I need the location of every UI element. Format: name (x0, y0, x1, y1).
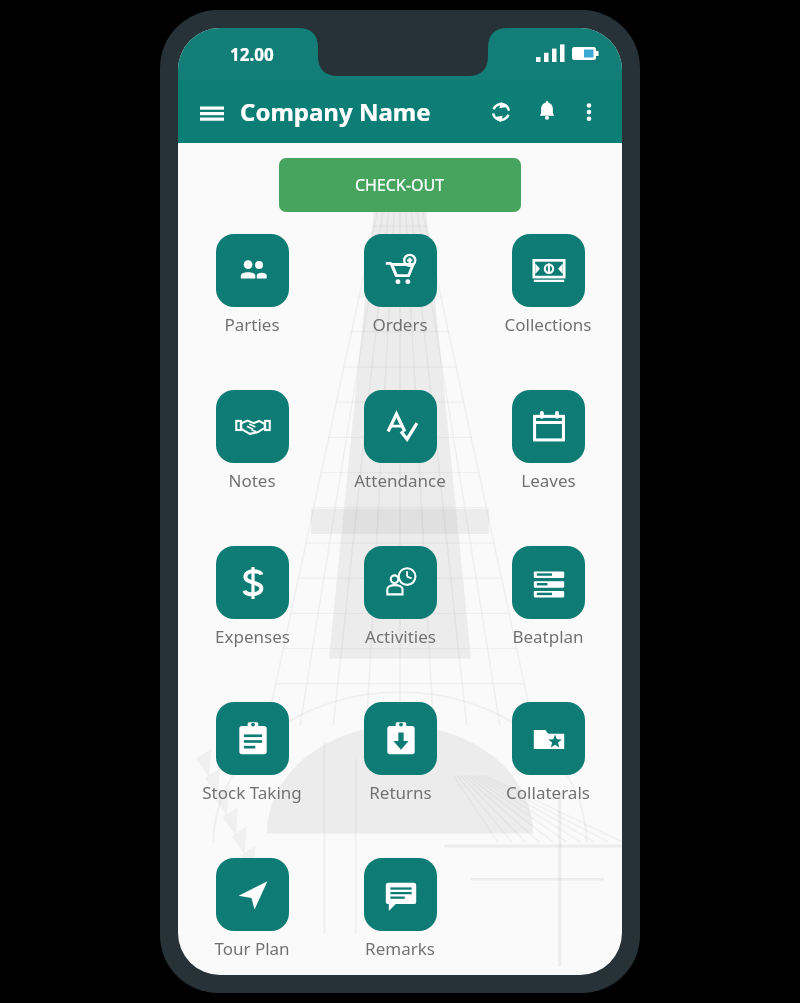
button[interactable]: Sync (482, 93, 520, 131)
staticText: Leaves (521, 469, 576, 492)
button[interactable]: Stock Taking (192, 702, 312, 804)
button[interactable]: Beatplan (488, 546, 608, 648)
staticText: CHECK-OUT (355, 174, 445, 196)
staticText: Stock Taking (202, 781, 302, 804)
staticText: Parties (224, 313, 280, 336)
button[interactable]: Orders (340, 234, 460, 336)
staticText: Beatplan (512, 625, 584, 648)
button[interactable]: Collections (488, 234, 608, 336)
button[interactable]: Expenses (192, 546, 312, 648)
button[interactable]: Tour Plan (192, 858, 312, 960)
button[interactable]: Menu (194, 94, 230, 130)
staticText: Notes (228, 469, 276, 492)
button[interactable]: Collaterals (488, 702, 608, 804)
staticText: Remarks (365, 937, 435, 960)
button[interactable]: Notes (192, 390, 312, 492)
staticText: Orders (372, 313, 428, 336)
button[interactable]: Activities (340, 546, 460, 648)
button[interactable]: Remarks (340, 858, 460, 960)
staticText: Attendance (354, 469, 446, 492)
staticText: Activities (365, 625, 436, 648)
staticText: Returns (369, 781, 432, 804)
staticText: Collections (504, 313, 592, 336)
button[interactable]: CHECK-OUT (279, 158, 521, 212)
button[interactable]: Leaves (488, 390, 608, 492)
button[interactable]: Parties (192, 234, 312, 336)
button[interactable]: Notifications (528, 93, 566, 131)
staticText: Tour Plan (214, 937, 290, 960)
staticText: Company Name (240, 95, 431, 128)
button[interactable]: Returns (340, 702, 460, 804)
staticText: Collaterals (506, 781, 590, 804)
staticText: Expenses (215, 625, 290, 648)
button[interactable]: More options (572, 95, 606, 129)
staticText: 12.00 (230, 43, 274, 66)
button[interactable]: Attendance (340, 390, 460, 492)
